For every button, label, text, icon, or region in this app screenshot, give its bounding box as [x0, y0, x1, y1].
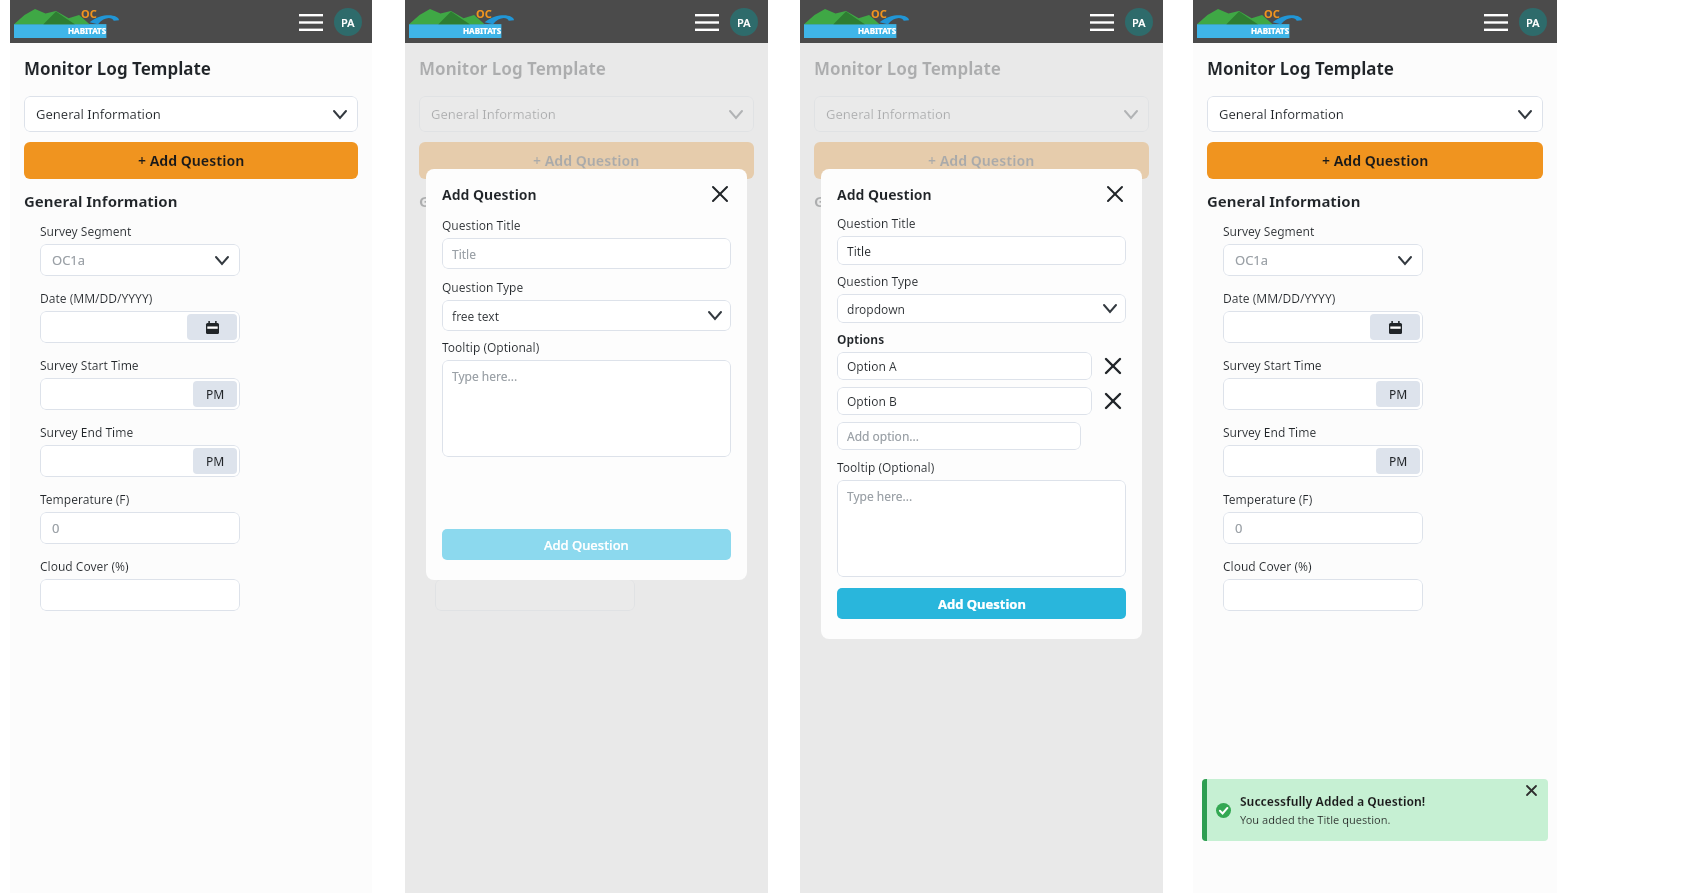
button[interactable]: Add Question — [442, 529, 731, 560]
staticText: PM — [1389, 453, 1408, 469]
button[interactable]: Pick date — [187, 314, 237, 340]
staticText: Survey Start Time — [435, 357, 534, 373]
button[interactable]: PM — [193, 448, 237, 474]
button[interactable]: PM — [193, 381, 237, 407]
button[interactable]: PM — [983, 448, 1027, 474]
staticText: HABITATS — [68, 25, 107, 36]
button[interactable]: Close — [1104, 183, 1126, 205]
button[interactable]: PM — [588, 448, 632, 474]
staticText: PM — [206, 386, 225, 402]
staticText: free text — [452, 308, 500, 324]
staticText: Date (MM/DD/YYYY) — [40, 290, 153, 306]
staticText: Successfully Added a Question! — [1240, 793, 1426, 809]
staticText: PA — [737, 15, 751, 30]
staticText: Temperature (F) — [40, 491, 130, 507]
button[interactable]: + Add Question — [814, 142, 1149, 179]
staticText: Add Question — [544, 536, 629, 554]
button[interactable]: Menu — [1087, 8, 1117, 36]
staticText: Survey Segment — [40, 223, 132, 239]
button[interactable]: PM — [983, 381, 1027, 407]
staticText: OC — [1264, 6, 1280, 21]
staticText: Date (MM/DD/YYYY) — [435, 290, 548, 306]
staticText: Survey End Time — [40, 424, 134, 440]
staticText: Temperature (F) — [1223, 491, 1313, 507]
button[interactable]: PA — [1125, 8, 1153, 36]
staticText: PA — [1132, 15, 1146, 30]
staticText: Survey End Time — [830, 424, 924, 440]
staticText: You added the Title question. — [1240, 812, 1391, 827]
button[interactable]: Pick date — [1370, 314, 1420, 340]
button[interactable]: Successfully Added a Question! — [1202, 779, 1548, 841]
staticText: + Add Question — [138, 151, 245, 170]
staticText: PA — [1526, 15, 1540, 30]
button[interactable]: dropdown — [837, 294, 1126, 323]
staticText: Survey Segment — [1223, 223, 1315, 239]
staticText: Title — [847, 243, 871, 259]
button[interactable]: Dismiss — [1522, 783, 1540, 797]
staticText: Cloud Cover (%) — [435, 558, 524, 574]
staticText: Survey End Time — [435, 424, 529, 440]
staticText: Tooltip (Optional) — [442, 339, 540, 355]
button[interactable]: + Add Question — [24, 142, 358, 179]
button[interactable]: PM — [1376, 448, 1420, 474]
staticText: PM — [206, 453, 225, 469]
staticText: Monitor Log Template — [24, 57, 211, 80]
button[interactable]: + Add Question — [419, 142, 754, 179]
button[interactable]: Menu — [1481, 8, 1511, 36]
button[interactable]: Menu — [296, 8, 326, 36]
staticText: Option B — [847, 393, 897, 409]
staticText: General Information — [1207, 191, 1361, 211]
staticText: Add Question — [837, 185, 1104, 204]
staticText: Survey Start Time — [40, 357, 139, 373]
staticText: Cloud Cover (%) — [830, 558, 919, 574]
staticText: Monitor Log Template — [419, 57, 606, 80]
button[interactable]: Pick date — [977, 314, 1027, 340]
button[interactable]: PA — [334, 8, 362, 36]
staticText: Options — [837, 331, 885, 347]
button[interactable]: Remove Option A — [1100, 353, 1126, 379]
staticText: Survey Segment — [830, 223, 922, 239]
staticText: OC — [81, 6, 97, 21]
staticText: + Add Question — [928, 151, 1035, 170]
staticText: General Information — [814, 191, 968, 211]
staticText: HABITATS — [858, 25, 897, 36]
staticText: Survey Start Time — [1223, 357, 1322, 373]
staticText: 0 — [52, 519, 60, 537]
staticText: PM — [601, 453, 620, 469]
staticText: Date (MM/DD/YYYY) — [1223, 290, 1336, 306]
button[interactable]: PA — [1519, 8, 1547, 36]
button[interactable]: free text — [442, 300, 731, 331]
staticText: General Information — [419, 191, 573, 211]
staticText: OC — [871, 6, 887, 21]
button[interactable]: Menu — [692, 8, 722, 36]
button[interactable]: PM — [1376, 381, 1420, 407]
staticText: Type here... — [847, 488, 913, 504]
staticText: OC1a — [52, 251, 86, 269]
staticText: Survey Start Time — [830, 357, 929, 373]
button[interactable]: Add Question — [837, 588, 1126, 619]
staticText: Tooltip (Optional) — [837, 459, 935, 475]
staticText: Option A — [847, 358, 897, 374]
staticText: PM — [1389, 386, 1408, 402]
staticText: Monitor Log Template — [814, 57, 1001, 80]
button[interactable]: Close — [709, 183, 731, 205]
staticText: Question Title — [442, 217, 521, 233]
button[interactable]: Pick date — [582, 314, 632, 340]
staticText: OC1a — [447, 251, 481, 269]
staticText: + Add Question — [533, 151, 640, 170]
staticText: Type here... — [452, 368, 518, 384]
button[interactable]: + Add Question — [1207, 142, 1543, 179]
staticText: OC1a — [842, 251, 876, 269]
staticText: Add Question — [442, 185, 709, 204]
staticText: Date (MM/DD/YYYY) — [830, 290, 943, 306]
button[interactable]: Remove Option B — [1100, 388, 1126, 414]
staticText: HABITATS — [1251, 25, 1290, 36]
button[interactable]: PA — [730, 8, 758, 36]
staticText: 0 — [1235, 519, 1243, 537]
staticText: HABITATS — [463, 25, 502, 36]
staticText: Title — [452, 246, 476, 262]
